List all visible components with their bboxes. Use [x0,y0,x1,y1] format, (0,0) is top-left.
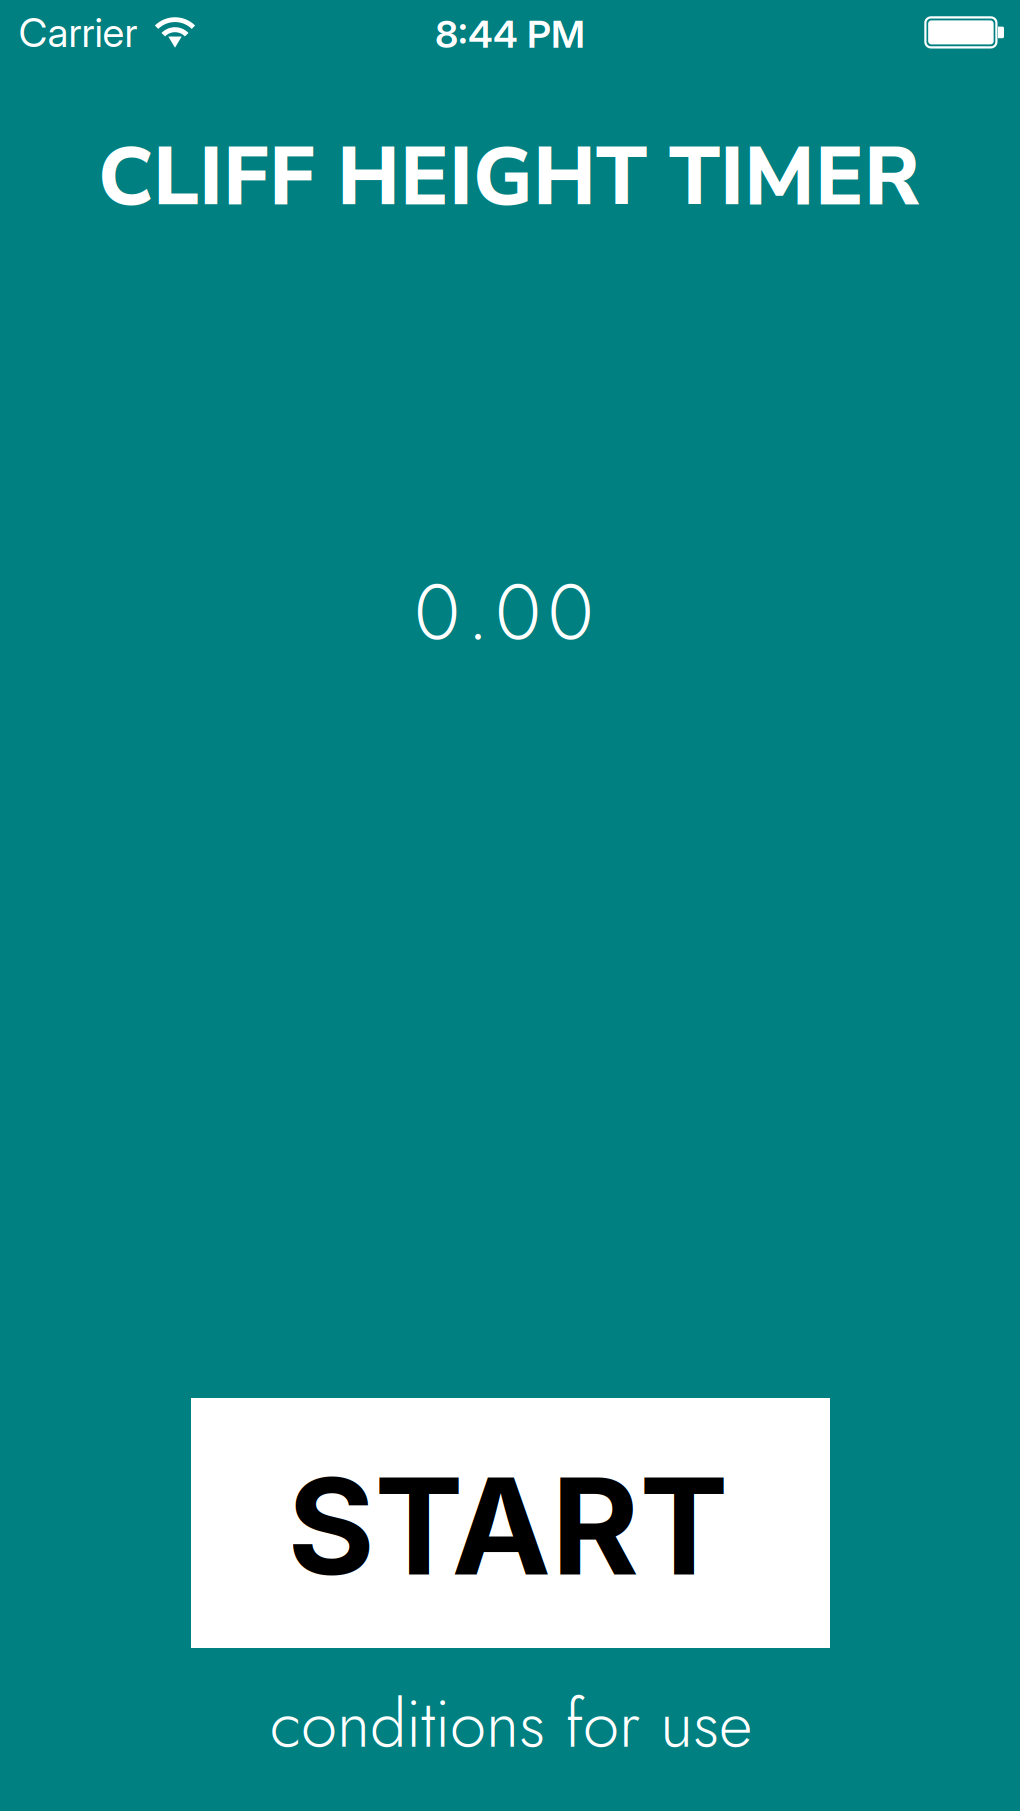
button[interactable]: conditions for use [231,1688,791,1760]
staticText: START [287,1445,728,1607]
staticText: conditions for use [270,1677,752,1771]
staticText: 0.00 [414,555,594,669]
staticText: Carrier [18,8,137,57]
staticText: CLIFF HEIGHT TIMER [98,123,920,233]
staticText: 8:44 PM [435,11,585,57]
button[interactable]: START [191,1398,830,1648]
